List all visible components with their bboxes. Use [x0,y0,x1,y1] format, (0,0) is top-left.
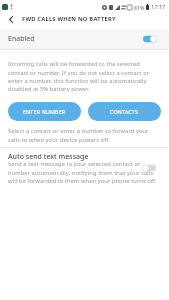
button[interactable]: Switch on [143,34,157,44]
staticText: Incoming calls will be forwarded to the … [8,60,150,92]
button[interactable]: ENTER NUMBER [8,102,81,121]
button[interactable]: CONTACTS [88,102,161,121]
staticText: Send a text message to your selected con… [8,160,157,184]
staticText: 17:17 [151,3,166,11]
staticText: Enabled [8,34,35,44]
button[interactable]: Switch off [142,163,156,173]
button[interactable]: Auto send text message [0,148,169,186]
staticText: 81% [134,4,145,11]
staticText: CONTACTS [110,108,139,115]
staticText: FWD CALLS WHEN NO BATTERY [22,15,116,23]
staticText: ENTER NUMBER [23,108,66,115]
button[interactable]: Back [0,11,22,27]
button[interactable]: Enabled [0,29,169,49]
staticText: Select a contact or enter a number to fo… [8,127,149,143]
staticText: Auto send text message [8,152,89,162]
